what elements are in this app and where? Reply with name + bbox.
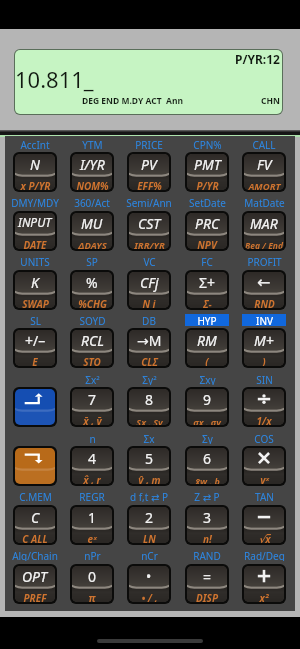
button[interactable]: PMT [187,154,227,190]
staticText: DATE [23,238,47,249]
button[interactable]: RM [187,330,227,366]
button[interactable]: 2 [129,507,169,543]
staticText: SOYD [79,314,106,326]
button[interactable]: →M [129,330,169,366]
button[interactable]: I/YR [72,154,112,190]
staticText: ΔDAYS [78,239,107,249]
staticText: Sx , Sy [136,416,163,425]
button[interactable]: = [187,566,227,602]
button[interactable]: ← [244,272,284,308]
staticText: 5 [145,449,154,468]
button[interactable]: 1 [72,507,112,543]
staticText: SL [30,314,41,326]
button[interactable]: 5 [129,448,169,484]
button[interactable]: √x̅ [244,507,284,543]
staticText: nCr [141,549,158,561]
staticText: N [30,155,40,174]
staticText: P/YR:12 [235,51,280,67]
staticText: DMY/MDY [11,196,59,208]
staticText: YTM [82,138,103,150]
button[interactable]: OPT [15,566,55,602]
staticText: RAND [193,549,221,561]
button[interactable]: Σ+ [187,272,227,308]
staticText: +/– [25,331,46,350]
button[interactable]: 0 [72,566,112,602]
staticText: Rad/Deg [244,549,285,561]
staticText: PV [141,155,157,174]
staticText: x² [259,591,269,602]
button[interactable]: yˣ [244,448,284,484]
button[interactable]: MAR [244,213,284,249]
button[interactable]: 7 [72,389,112,425]
button[interactable]: x² [244,566,284,602]
staticText: PRC [195,214,220,233]
staticText: CFj [140,273,159,292]
button[interactable]: RCL [72,330,112,366]
staticText: DISP [196,591,218,602]
staticText: 2 [145,508,154,527]
staticText: • [146,567,152,586]
staticText: K [31,273,39,292]
button[interactable]: 3 [187,507,227,543]
button[interactable]: 9 [187,389,227,425]
button[interactable]: C [15,507,55,543]
staticText: MAR [250,214,278,233]
staticText: NOM% [76,179,109,190]
button[interactable]: PRC [187,213,227,249]
staticText: ← [257,273,271,292]
staticText: E [32,355,38,366]
staticText: d f,t ⇄ P [130,490,168,502]
button[interactable]: M+ [244,330,284,366]
staticText: CHN [261,95,280,107]
staticText: % [86,273,98,292]
staticText: Σy [202,432,213,444]
button[interactable]: 6 [187,448,227,484]
staticText: DB [142,314,156,326]
staticText: TAN [255,490,274,502]
staticText: x̄ , ȳ [83,414,102,425]
button[interactable]: Enter [15,389,55,425]
button[interactable]: INPUT [15,213,55,249]
staticText: 0 [88,567,97,586]
button[interactable]: 4 [72,448,112,484]
button[interactable]: • [129,566,169,602]
staticText: C [31,508,40,527]
staticText: ( [205,355,209,366]
staticText: 360/Act [74,196,110,208]
button[interactable]: % [72,272,112,308]
staticText: PROFIT [247,255,282,267]
button[interactable]: CST [129,213,169,249]
staticText: CALL [252,138,276,150]
button[interactable]: CFj [129,272,169,308]
button[interactable]: N [15,154,55,190]
button[interactable]: Shift down [15,448,55,484]
staticText: P/YR [196,179,219,190]
staticText: FV [257,155,272,174]
staticText: M+ [254,331,274,350]
staticText: CST [138,214,161,233]
button[interactable]: +/– [15,330,55,366]
staticText: EFF% [137,179,162,190]
staticText: AccInt [20,138,50,150]
staticText: 7 [88,390,97,409]
staticText: SetDate [189,196,226,208]
button[interactable]: FV [244,154,284,190]
staticText: 6 [203,449,212,468]
staticText: STO [83,355,101,366]
staticText: IRR/YR [134,239,165,249]
staticText: 9 [203,390,212,409]
staticText: AMORT [248,180,281,190]
staticText: √x̅ [258,532,271,543]
button[interactable]: PV [129,154,169,190]
staticText: Σy² [142,373,157,385]
staticText: RM [197,331,217,350]
button[interactable]: MU [72,213,112,249]
staticText: REGR [79,490,105,502]
staticText: x̄w , b [195,475,220,484]
staticText: RND [254,297,275,308]
button[interactable]: K [15,272,55,308]
staticText: OPT [22,567,48,586]
staticText: Σxy [199,373,216,385]
button[interactable]: 1/x [244,389,284,425]
button[interactable]: 8 [129,389,169,425]
